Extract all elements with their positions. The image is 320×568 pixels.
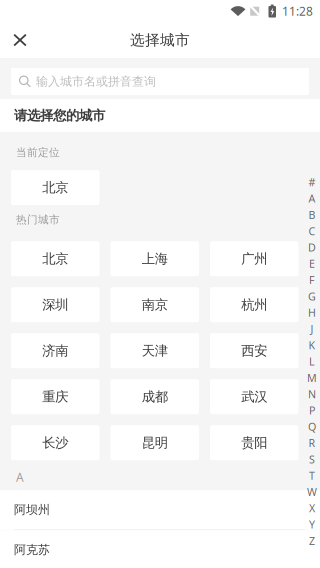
button[interactable]: W xyxy=(304,484,320,500)
staticText: 长沙 xyxy=(42,434,68,451)
staticText: 杭州 xyxy=(241,296,267,313)
staticText: 成都 xyxy=(142,388,168,405)
button[interactable]: M xyxy=(304,370,320,386)
button[interactable]: K xyxy=(304,337,320,353)
button[interactable]: R xyxy=(304,435,320,451)
button[interactable]: T xyxy=(304,467,320,484)
staticText: 当前定位 xyxy=(16,146,60,159)
button[interactable]: 输入城市名或拼音查询 xyxy=(11,68,309,95)
button[interactable]: 北京 xyxy=(11,241,99,276)
staticText: 贵阳 xyxy=(241,434,267,451)
button[interactable]: S xyxy=(304,451,320,467)
button[interactable]: X xyxy=(304,500,320,516)
button[interactable]: 深圳 xyxy=(11,287,99,322)
staticText: W xyxy=(307,485,317,499)
staticText: 阿坝州 xyxy=(14,502,50,517)
button[interactable]: 长沙 xyxy=(11,425,99,460)
button[interactable]: B xyxy=(304,207,320,223)
staticText: # xyxy=(308,175,315,189)
button[interactable]: 杭州 xyxy=(210,287,298,322)
button[interactable]: 阿克苏 xyxy=(0,530,320,568)
button[interactable]: E xyxy=(304,255,320,272)
button[interactable]: 上海 xyxy=(110,241,199,276)
staticText: T xyxy=(309,468,315,483)
staticText: 西安 xyxy=(241,342,267,359)
staticText: N xyxy=(308,387,316,401)
button[interactable]: 武汉 xyxy=(210,379,298,414)
button[interactable]: A xyxy=(304,190,320,207)
staticText: J xyxy=(310,322,313,336)
staticText: H xyxy=(308,305,316,320)
button[interactable]: # xyxy=(304,174,320,190)
button[interactable]: P xyxy=(304,402,320,418)
staticText: 南京 xyxy=(142,296,168,313)
button[interactable]: 济南 xyxy=(11,333,99,368)
staticText: Y xyxy=(309,517,315,532)
button[interactable]: F xyxy=(304,272,320,288)
staticText: 济南 xyxy=(42,342,68,359)
staticText: 昆明 xyxy=(142,434,168,451)
staticText: Q xyxy=(308,420,316,434)
staticText: 天津 xyxy=(142,342,168,359)
button[interactable]: 阿坝州 xyxy=(0,490,320,529)
button[interactable]: Close xyxy=(0,22,40,58)
staticText: L xyxy=(309,354,315,369)
staticText: F xyxy=(309,273,315,287)
staticText: P xyxy=(309,403,315,417)
button[interactable]: 广州 xyxy=(210,241,298,276)
button[interactable]: Q xyxy=(304,418,320,435)
staticText: 广州 xyxy=(241,250,267,267)
button[interactable]: 北京 xyxy=(11,170,99,205)
staticText: 热门城市 xyxy=(16,213,60,226)
button[interactable]: H xyxy=(304,304,320,321)
staticText: D xyxy=(308,240,316,254)
button[interactable]: 西安 xyxy=(210,333,298,368)
staticText: 北京 xyxy=(42,250,68,267)
button[interactable]: N xyxy=(304,386,320,402)
staticText: 阿克苏 xyxy=(14,542,50,557)
staticText: 重庆 xyxy=(42,388,68,405)
staticText: Z xyxy=(309,534,315,548)
staticText: 选择城市 xyxy=(130,31,190,49)
staticText: E xyxy=(309,257,315,271)
staticText: 输入城市名或拼音查询 xyxy=(36,74,156,89)
staticText: A xyxy=(308,191,315,206)
staticText: A xyxy=(16,469,24,485)
staticText: 武汉 xyxy=(241,388,267,405)
button[interactable]: Z xyxy=(304,533,320,549)
staticText: M xyxy=(307,371,317,385)
staticText: 请选择您的城市 xyxy=(14,107,105,124)
button[interactable]: J xyxy=(304,321,320,337)
button[interactable]: D xyxy=(304,239,320,255)
button[interactable]: 成都 xyxy=(110,379,199,414)
staticText: S xyxy=(309,452,315,466)
staticText: 11:28 xyxy=(282,3,313,19)
staticText: B xyxy=(308,208,315,222)
staticText: X xyxy=(309,501,315,515)
button[interactable]: 天津 xyxy=(110,333,199,368)
button[interactable]: 昆明 xyxy=(110,425,199,460)
button[interactable]: C xyxy=(304,223,320,239)
button[interactable]: L xyxy=(304,353,320,370)
button[interactable]: 贵阳 xyxy=(210,425,298,460)
button[interactable]: 南京 xyxy=(110,287,199,322)
staticText: G xyxy=(308,289,316,303)
staticText: 上海 xyxy=(142,250,168,267)
staticText: 北京 xyxy=(42,179,68,196)
staticText: 深圳 xyxy=(42,296,68,313)
staticText: R xyxy=(308,436,315,450)
staticText: C xyxy=(308,224,315,238)
button[interactable]: Y xyxy=(304,516,320,533)
button[interactable]: 重庆 xyxy=(11,379,99,414)
staticText: K xyxy=(308,338,315,352)
button[interactable]: G xyxy=(304,288,320,304)
